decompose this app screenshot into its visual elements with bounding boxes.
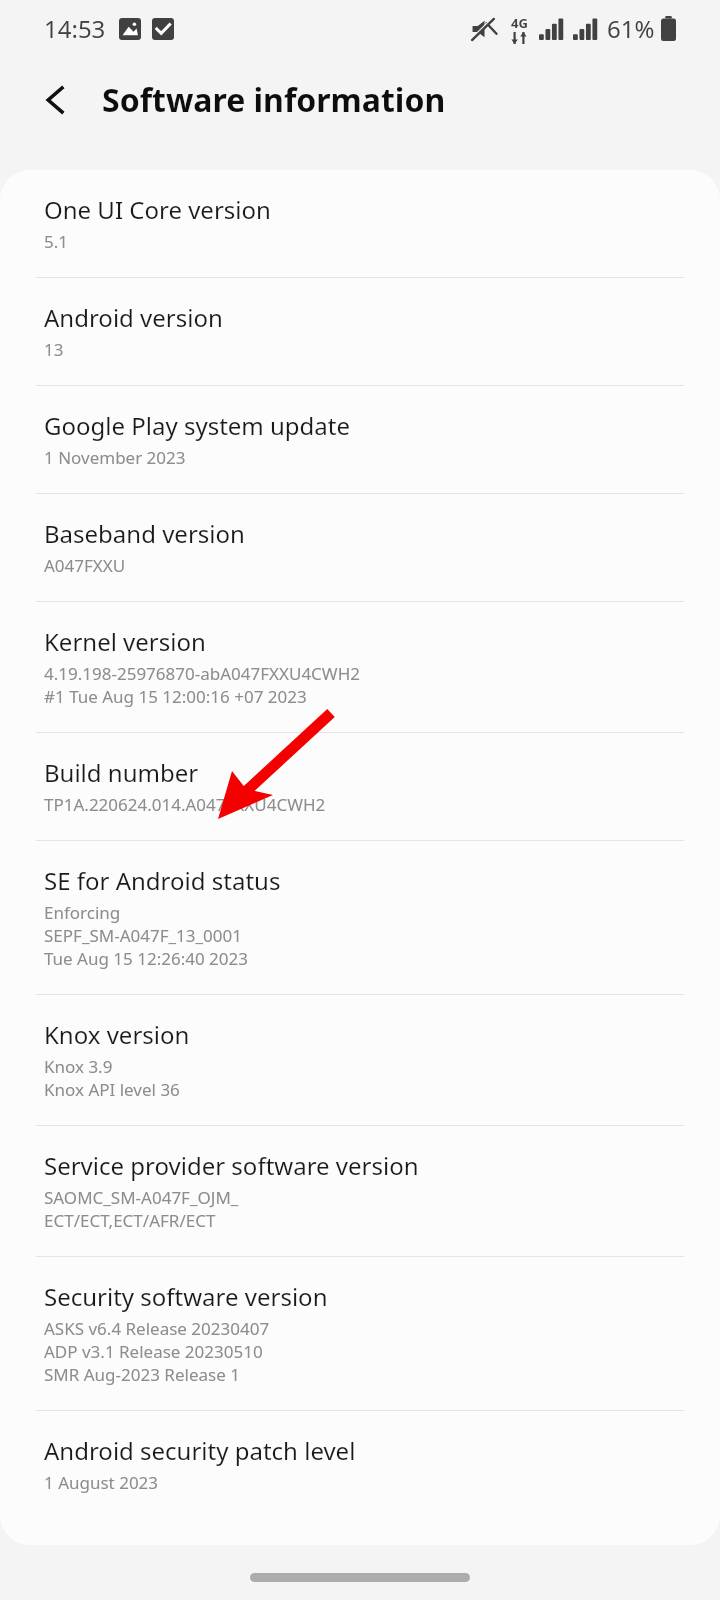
staticText: SEPF_SM-A047F_13_0001 [44,924,242,947]
staticText: Baseband version [44,517,245,550]
staticText: SAOMC_SM-A047F_OJM_ [44,1186,239,1209]
staticText: TP1A.220624.014.A047FXXU4CWH2 [44,793,326,816]
staticText: SMR Aug-2023 Release 1 [44,1363,240,1386]
staticText: Google Play system update [44,409,351,442]
staticText: 13 [44,338,64,361]
staticText: SE for Android status [44,864,281,897]
button[interactable]: One UI Core version [0,170,720,277]
staticText: ASKS v6.4 Release 20230407 [44,1317,270,1340]
button[interactable]: Back [24,68,88,132]
staticText: Security software version [44,1280,328,1313]
button[interactable]: Android version [0,278,720,385]
staticText: Enforcing [44,901,121,924]
staticText: 1 August 2023 [44,1471,159,1494]
staticText: 1 November 2023 [44,446,186,469]
staticText: 5.1 [44,230,69,253]
button[interactable]: Service provider software version [0,1126,720,1256]
staticText: ECT/ECT,ECT/AFR/ECT [44,1209,216,1232]
staticText: Android security patch level [44,1434,356,1467]
staticText: Knox API level 36 [44,1078,180,1101]
staticText: Software information [102,78,446,122]
button[interactable]: Baseband version [0,494,720,601]
staticText: 61% [607,12,655,45]
staticText: 4G [511,14,528,32]
staticText: Knox 3.9 [44,1055,113,1078]
staticText: 4.19.198-25976870-abA047FXXU4CWH2 [44,662,360,685]
staticText: #1 Tue Aug 15 12:00:16 +07 2023 [44,685,307,708]
staticText: Knox version [44,1018,190,1051]
button[interactable]: Kernel version [0,602,720,732]
button[interactable]: SE for Android status [0,841,720,994]
button[interactable]: Knox version [0,995,720,1125]
button[interactable]: Security software version [0,1257,720,1410]
staticText: Build number [44,756,199,789]
staticText: Service provider software version [44,1149,419,1182]
staticText: ADP v3.1 Release 20230510 [44,1340,263,1363]
button[interactable]: Build number [0,733,720,840]
button[interactable]: Android security patch level [0,1411,720,1518]
staticText: One UI Core version [44,193,271,226]
staticText: Android version [44,301,223,334]
staticText: A047FXXU [44,554,126,577]
staticText: Kernel version [44,625,206,658]
staticText: Tue Aug 15 12:26:40 2023 [44,947,248,970]
button[interactable]: Google Play system update [0,386,720,493]
staticText: 14:53 [44,12,106,45]
